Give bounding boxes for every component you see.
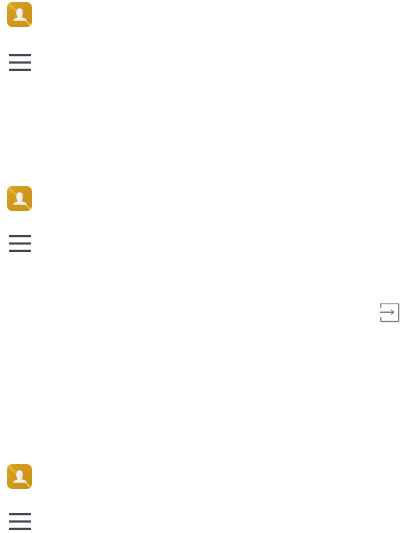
button[interactable]: Open menu: [9, 513, 31, 530]
button[interactable]: Open menu: [9, 54, 31, 71]
button[interactable]: Open menu: [9, 235, 31, 252]
button[interactable]: Account avatar: [7, 464, 32, 489]
button[interactable]: Log in: [379, 302, 402, 324]
button[interactable]: Account avatar: [7, 2, 32, 27]
button[interactable]: Account avatar: [7, 186, 32, 211]
